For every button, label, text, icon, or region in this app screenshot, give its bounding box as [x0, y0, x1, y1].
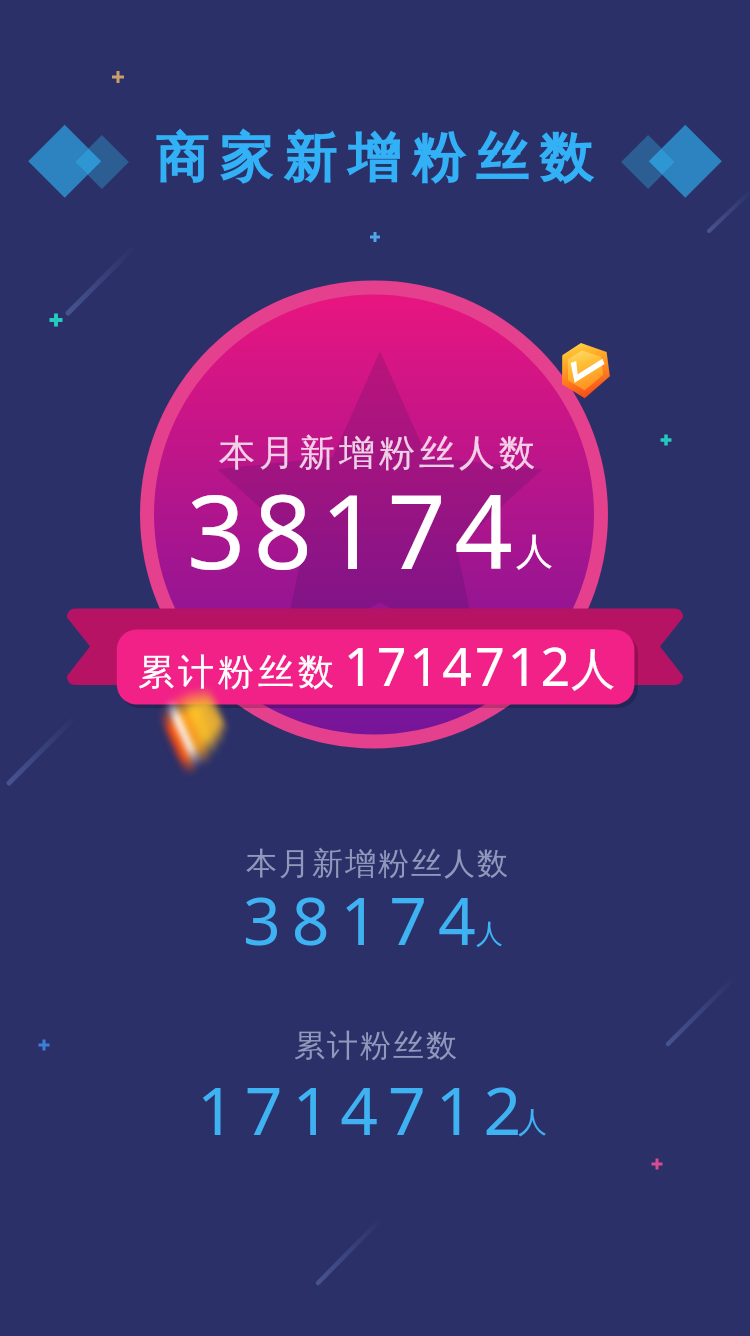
staticText: 累计粉丝数: [136, 649, 336, 694]
staticText: 本月新增粉丝人数: [217, 430, 537, 475]
staticText: 1714712: [344, 630, 574, 701]
staticText: 38174: [243, 874, 487, 964]
staticText: 人: [518, 1104, 547, 1141]
button[interactable]: 累计粉丝数: [175, 1010, 575, 1160]
button[interactable]: Verified badge: [556, 342, 612, 398]
button[interactable]: 本月新增粉丝人数: [67, 280, 683, 750]
staticText: 38174: [187, 460, 522, 599]
staticText: 本月新增粉丝人数: [245, 844, 509, 883]
staticText: 人: [476, 917, 503, 951]
staticText: 累计粉丝数: [293, 1026, 458, 1065]
staticText: 1714712: [197, 1064, 532, 1154]
button[interactable]: 本月新增粉丝人数: [175, 828, 575, 968]
button[interactable]: 商家新增粉丝数: [20, 118, 730, 206]
staticText: 人: [516, 528, 553, 575]
staticText: 人: [571, 642, 615, 697]
staticText: 商家新增粉丝数: [150, 125, 598, 192]
